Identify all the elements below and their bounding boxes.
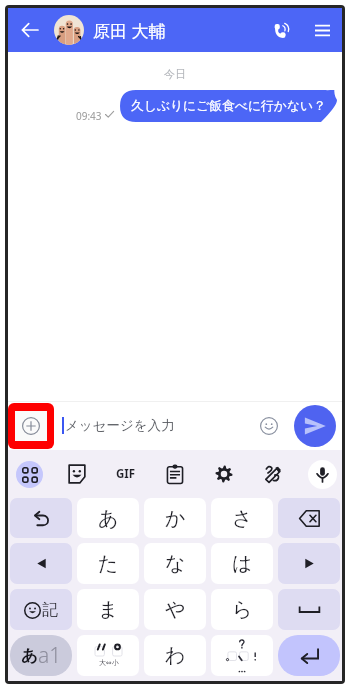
staticText: 原田 大輔 (93, 19, 166, 42)
button[interactable]: Clipboard (161, 460, 189, 488)
staticText: 記 (42, 600, 58, 620)
staticText: あ (21, 645, 38, 666)
staticText: た (98, 551, 119, 576)
staticText: あ (98, 506, 119, 531)
staticText: ま (98, 597, 119, 622)
button[interactable] (278, 498, 340, 538)
button[interactable]: Menu (302, 10, 342, 50)
staticText: な (165, 551, 186, 576)
button[interactable]: Send (294, 405, 336, 447)
button[interactable]: Stickers (63, 460, 91, 488)
button[interactable]: な (144, 543, 206, 584)
button[interactable]: Contact photo (54, 15, 84, 45)
button[interactable]: ら (211, 589, 273, 630)
button[interactable]: Settings (210, 460, 238, 488)
staticText: や (165, 597, 186, 622)
button[interactable]: Add attachment (15, 411, 47, 441)
button[interactable] (211, 635, 273, 676)
button[interactable]: Call (262, 10, 302, 50)
button[interactable]: Back (8, 8, 52, 52)
button[interactable] (278, 543, 340, 584)
staticText: 大⇔小 (99, 658, 119, 667)
button[interactable]: さ (211, 498, 273, 538)
staticText: GIF (116, 466, 136, 482)
staticText: 今日 (8, 67, 342, 81)
button[interactable]: わ (144, 635, 206, 676)
button[interactable]: は (211, 543, 273, 584)
button[interactable]: GIF (111, 459, 141, 489)
staticText: a1 (38, 641, 62, 670)
staticText: ら (232, 597, 253, 622)
button[interactable] (278, 635, 340, 676)
button[interactable] (10, 498, 72, 538)
button[interactable]: Emoji (256, 413, 282, 439)
staticText: わ (165, 643, 186, 668)
button[interactable]: か (144, 498, 206, 538)
staticText: か (165, 506, 186, 531)
button[interactable]: 大⇔小 (77, 635, 139, 676)
button[interactable]: 久しぶりにご飯食べに行かない？ (120, 90, 337, 122)
button[interactable]: あ (10, 635, 72, 676)
staticText: 久しぶりにご飯食べに行かない？ (131, 98, 326, 114)
button[interactable] (278, 589, 340, 630)
button[interactable]: Apps (16, 461, 43, 488)
staticText: メッセージを入力 (65, 417, 175, 434)
button[interactable]: あ (77, 498, 139, 538)
button[interactable]: 記 (10, 589, 72, 630)
button[interactable]: Handwriting (259, 460, 287, 488)
staticText: は (232, 551, 253, 576)
button[interactable]: Voice input (308, 460, 337, 489)
button[interactable]: や (144, 589, 206, 630)
staticText: さ (232, 506, 253, 531)
button[interactable]: ま (77, 589, 139, 630)
button[interactable] (10, 543, 72, 584)
staticText: 09:43 (76, 109, 102, 123)
button[interactable]: た (77, 543, 139, 584)
